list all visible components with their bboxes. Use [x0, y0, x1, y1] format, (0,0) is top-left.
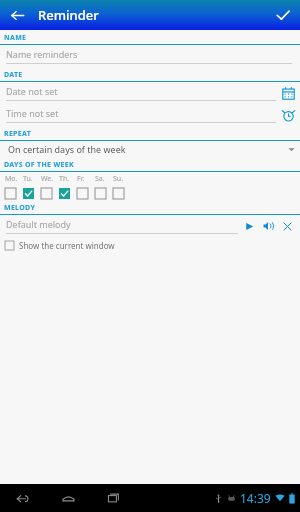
staticText: We.: [41, 174, 54, 184]
button[interactable]: Clear melody: [280, 219, 294, 233]
button[interactable]: Name reminders: [0, 45, 300, 67]
staticText: Time not set: [6, 107, 59, 119]
button[interactable]: Th.: [59, 186, 77, 200]
staticText: Default melody: [6, 218, 71, 230]
button[interactable]: Su.: [113, 186, 131, 200]
staticText: Fr.: [77, 174, 85, 184]
staticText: Su.: [113, 174, 124, 184]
button[interactable]: Fr.: [77, 186, 95, 200]
button[interactable]: On certain days of the week: [0, 141, 300, 157]
button[interactable]: Back: [10, 486, 34, 510]
staticText: REPEAT: [4, 129, 31, 139]
button[interactable]: Show the current window: [5, 237, 300, 253]
staticText: Reminder: [38, 6, 99, 24]
button[interactable]: Pick date: [280, 84, 296, 102]
button[interactable]: Mo.: [5, 186, 23, 200]
button[interactable]: Volume: [261, 219, 275, 233]
button[interactable]: Pick time: [280, 106, 296, 124]
staticText: NAME: [4, 33, 27, 43]
button[interactable]: Play melody: [242, 219, 256, 233]
staticText: Tu.: [23, 174, 33, 184]
staticText: Sa.: [95, 174, 105, 184]
staticText: Th.: [59, 174, 70, 184]
staticText: MELODY: [4, 203, 36, 213]
button[interactable]: Tu.: [23, 186, 41, 200]
staticText: Name reminders: [6, 48, 78, 60]
staticText: DAYS OF THE WEEK: [4, 160, 74, 170]
button[interactable]: We.: [41, 186, 59, 200]
button[interactable]: Default melody: [0, 215, 300, 237]
button[interactable]: Home: [56, 486, 80, 510]
staticText: Mo.: [5, 174, 18, 184]
staticText: Show the current window: [19, 240, 115, 251]
button[interactable]: Time not set: [0, 104, 300, 126]
button[interactable]: Sa.: [95, 186, 113, 200]
staticText: Date not set: [6, 85, 58, 97]
button[interactable]: Save: [266, 0, 300, 30]
staticText: On certain days of the week: [8, 143, 282, 155]
button[interactable]: Recent apps: [102, 486, 126, 510]
staticText: 14:39: [240, 490, 271, 506]
button[interactable]: Back: [0, 0, 34, 30]
button[interactable]: Date not set: [0, 82, 300, 104]
staticText: DATE: [4, 70, 23, 80]
